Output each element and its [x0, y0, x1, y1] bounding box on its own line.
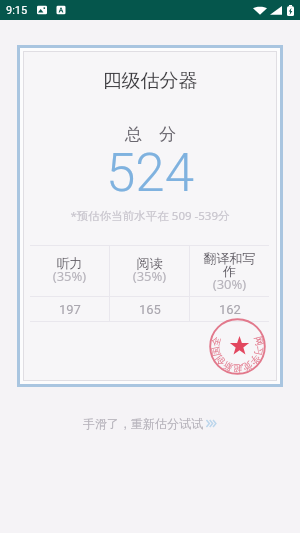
staticText: 524	[24, 142, 276, 204]
staticText: (35%)	[30, 267, 109, 285]
staticText: 197	[59, 302, 81, 317]
other: Official seal	[209, 318, 266, 375]
staticText: 翻译和写 作	[190, 250, 269, 280]
button[interactable]: 听力	[30, 246, 109, 296]
staticText: 手滑了，重新估分试试	[83, 416, 203, 431]
staticText: 阅读	[110, 255, 189, 271]
staticText: 162	[219, 302, 241, 317]
staticText: 9:15	[6, 4, 28, 17]
button[interactable]: 翻译和写 作	[190, 246, 269, 296]
button[interactable]: 手滑了，重新估分试试	[0, 416, 300, 431]
button[interactable]: 阅读	[110, 246, 189, 296]
staticText: 听力	[30, 255, 109, 271]
staticText: 四级估分器	[24, 69, 276, 93]
staticText: (35%)	[110, 267, 189, 285]
staticText: (30%)	[190, 275, 269, 293]
staticText: 总	[125, 124, 142, 145]
staticText: *预估你当前水平在 509 -539分	[24, 208, 276, 224]
staticText: 分	[159, 124, 176, 145]
staticText: 165	[139, 302, 161, 317]
